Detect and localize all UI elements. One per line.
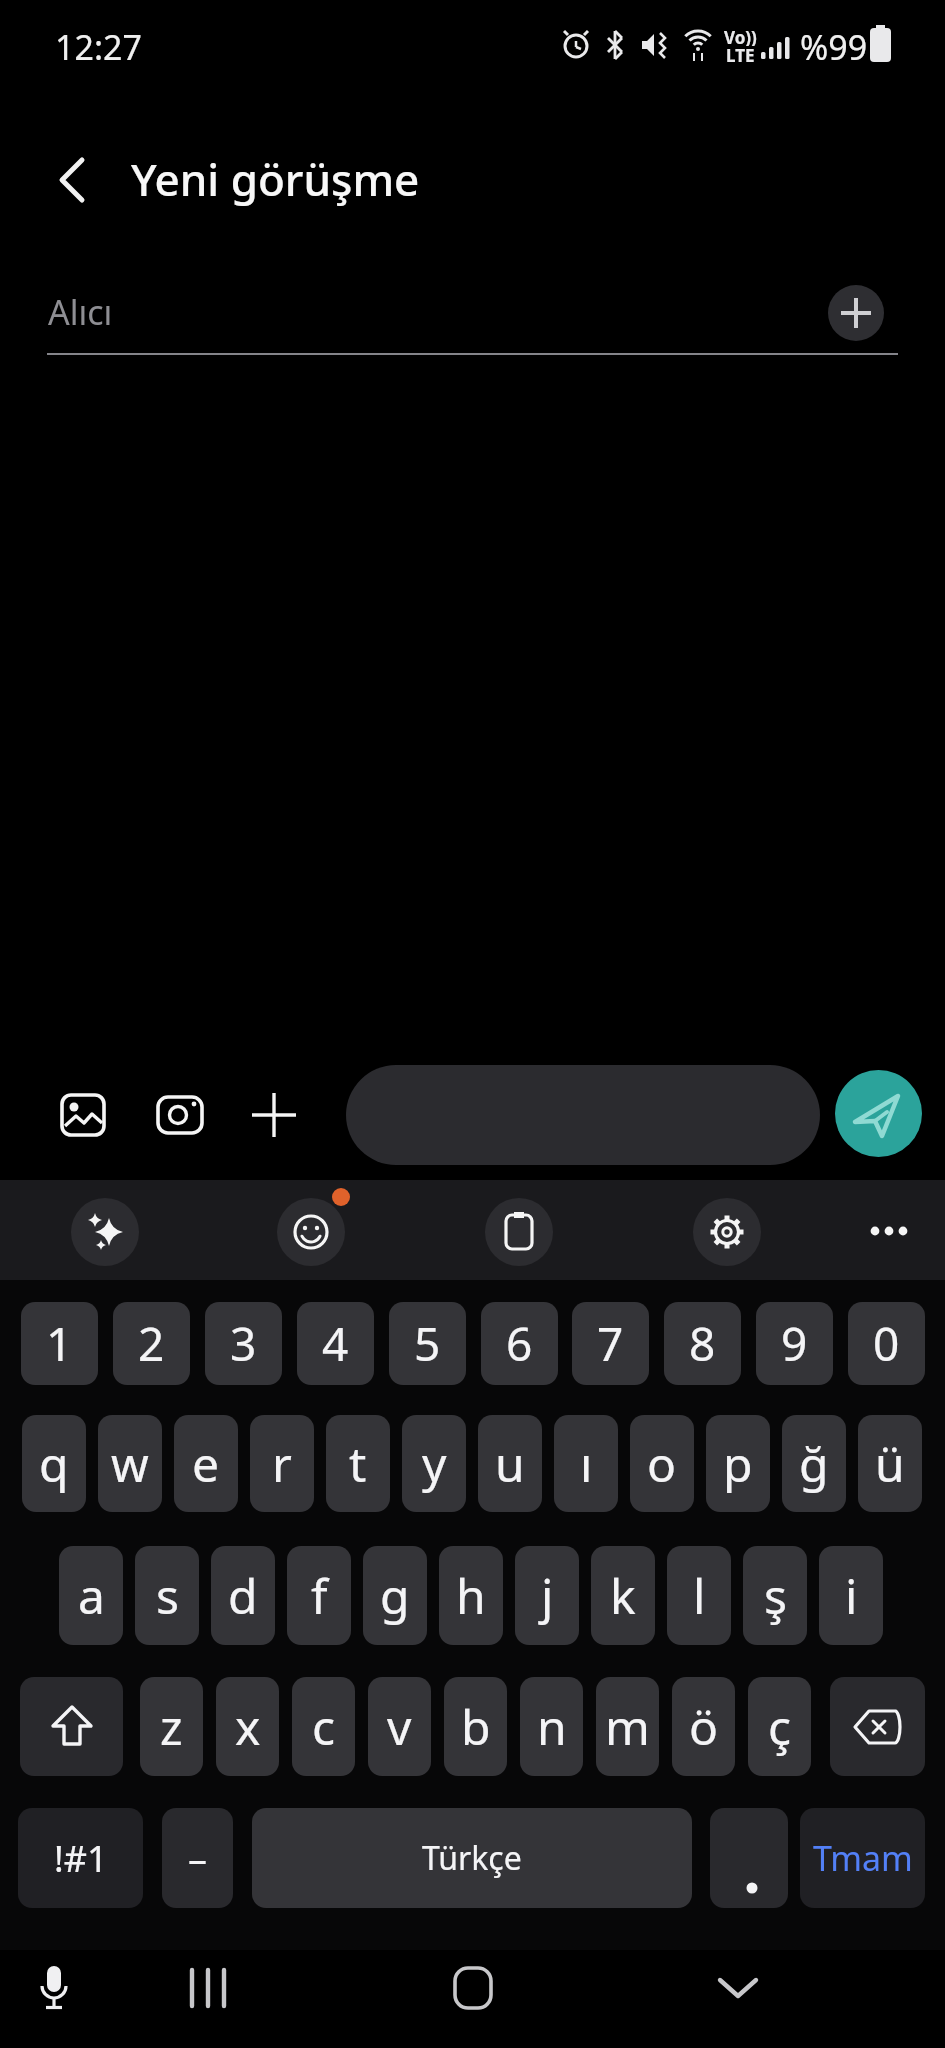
button[interactable] [182,1962,234,2014]
button[interactable]: Türkçe [252,1808,692,1908]
button[interactable]: 7 [572,1302,649,1385]
button[interactable]: Tmam [800,1808,925,1908]
staticText: 9 [781,1312,808,1375]
button[interactable]: ü [858,1415,922,1512]
button[interactable]: 3 [205,1302,282,1385]
button[interactable] [71,1198,139,1266]
button[interactable]: 6 [481,1302,558,1385]
staticText: e [192,1431,220,1496]
button[interactable] [835,1070,922,1157]
button[interactable]: k [591,1546,655,1645]
staticText: !#1 [54,1834,108,1883]
staticText: Vo)) [724,26,757,46]
staticText: 5 [414,1312,441,1375]
button[interactable] [58,1090,108,1140]
button[interactable] [858,1200,920,1262]
staticText: g [380,1563,410,1628]
button[interactable]: ö [672,1677,735,1776]
button[interactable]: m [596,1677,659,1776]
button[interactable] [40,150,100,210]
staticText: ö [689,1694,719,1759]
button[interactable]: ç [748,1677,811,1776]
button[interactable]: l [667,1546,731,1645]
button[interactable]: c [292,1677,355,1776]
staticText: f [311,1563,328,1628]
button[interactable]: 9 [756,1302,833,1385]
button[interactable] [155,1092,205,1138]
staticText: 7 [597,1312,624,1375]
button[interactable] [346,1065,820,1165]
staticText: Türkçe [422,1836,522,1880]
staticText: ş [764,1563,787,1628]
button[interactable] [28,1962,80,2014]
staticText: %99 [800,24,868,66]
staticText: 4 [322,1312,349,1375]
button[interactable]: q [22,1415,86,1512]
button[interactable]: d [211,1546,275,1645]
staticText: q [39,1431,69,1496]
button[interactable]: y [402,1415,466,1512]
button[interactable] [712,1962,764,2014]
staticText: ü [875,1431,905,1496]
button[interactable] [447,1962,499,2014]
button[interactable]: s [135,1546,199,1645]
staticText: w [111,1431,149,1496]
staticText: v [387,1694,412,1759]
button[interactable]: o [630,1415,694,1512]
staticText: p [723,1431,753,1496]
button[interactable]: – [162,1808,233,1908]
staticText: 2 [138,1312,165,1375]
staticText: z [160,1694,183,1759]
button[interactable]: n [520,1677,583,1776]
button[interactable]: p [706,1415,770,1512]
staticText: h [456,1563,486,1628]
staticText: – [188,1832,208,1884]
button[interactable] [250,1091,298,1139]
staticText: x [235,1694,261,1759]
staticText: ğ [799,1431,829,1496]
button[interactable]: ş [743,1546,807,1645]
staticText: 3 [230,1312,257,1375]
button[interactable]: a [59,1546,123,1645]
staticText: m [605,1694,650,1759]
button[interactable]: i [819,1546,883,1645]
button[interactable]: r [250,1415,314,1512]
button[interactable]: !#1 [18,1808,143,1908]
button[interactable] [277,1198,345,1266]
button[interactable]: 8 [664,1302,741,1385]
staticText: Alıcı [48,289,113,335]
staticText: 1 [46,1312,73,1375]
staticText: j [541,1563,554,1628]
button[interactable]: j [515,1546,579,1645]
button[interactable] [828,285,884,341]
button[interactable]: 1 [21,1302,98,1385]
button[interactable]: ğ [782,1415,846,1512]
button[interactable]: 2 [113,1302,190,1385]
button[interactable]: h [439,1546,503,1645]
button[interactable]: 5 [389,1302,466,1385]
button[interactable]: u [478,1415,542,1512]
button[interactable]: ı [554,1415,618,1512]
button[interactable] [830,1677,925,1776]
staticText: l [693,1563,706,1628]
button[interactable] [693,1198,761,1266]
button[interactable] [710,1808,788,1908]
button[interactable]: x [216,1677,279,1776]
button[interactable] [485,1198,553,1266]
button[interactable]: b [444,1677,507,1776]
button[interactable]: w [98,1415,162,1512]
button[interactable]: 4 [297,1302,374,1385]
button[interactable] [20,1677,123,1776]
button[interactable]: 0 [848,1302,925,1385]
staticText: r [272,1431,292,1496]
staticText: d [228,1563,258,1628]
button[interactable]: v [368,1677,431,1776]
button[interactable]: f [287,1546,351,1645]
button[interactable]: t [326,1415,390,1512]
staticText: 0 [873,1312,900,1375]
button[interactable]: e [174,1415,238,1512]
button[interactable]: g [363,1546,427,1645]
button[interactable]: z [140,1677,203,1776]
staticText: ç [768,1694,792,1759]
staticText: n [537,1694,567,1759]
